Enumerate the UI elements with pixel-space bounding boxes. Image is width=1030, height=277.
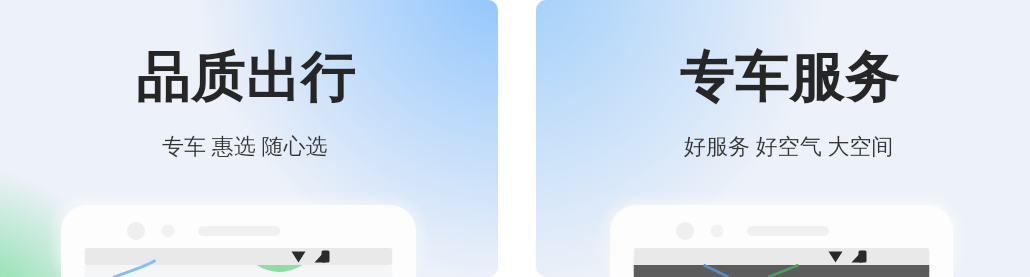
staticText: 专车服务 <box>679 44 899 112</box>
button[interactable]: 专车服务 <box>536 0 1030 277</box>
staticText: 专车 惠选 随心选 <box>162 130 328 160</box>
button[interactable]: 品质出行 <box>0 0 498 277</box>
staticText: 好服务 好空气 大空间 <box>684 130 894 160</box>
staticText: 品质出行 <box>135 44 355 112</box>
